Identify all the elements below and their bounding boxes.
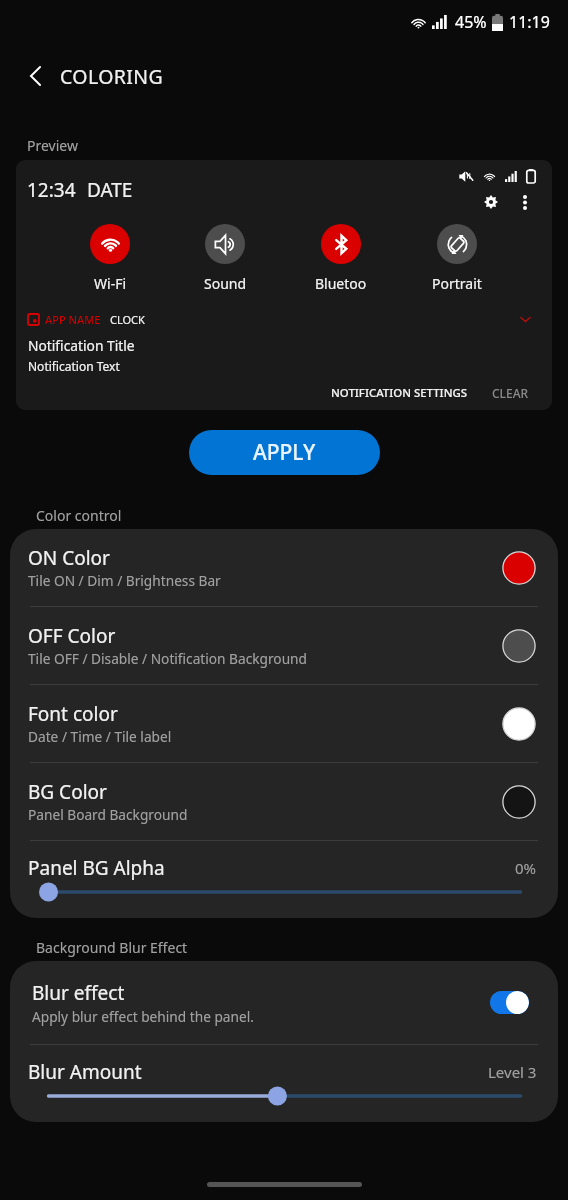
staticText: 12:34 xyxy=(27,177,76,203)
button[interactable]: APPLY xyxy=(189,430,380,475)
staticText: COLORING xyxy=(60,63,164,90)
staticText: OFF Color xyxy=(28,623,116,649)
button[interactable]: Blur effect xyxy=(10,961,558,1044)
button[interactable]: Portrait xyxy=(425,224,489,293)
staticText: Panel BG Alpha xyxy=(28,855,515,881)
staticText: 0% xyxy=(515,858,537,878)
staticText: DATE xyxy=(87,177,133,203)
staticText: NOTIFICATION SETTINGS xyxy=(331,385,468,401)
staticText: Sound xyxy=(204,274,247,293)
staticText: Date / Time / Tile label xyxy=(28,727,172,746)
staticText: Tile OFF / Disable / Notification Backgr… xyxy=(28,649,307,668)
button[interactable]: Sound xyxy=(193,224,257,293)
staticText: Notification Text xyxy=(28,358,120,374)
staticText: Wi-Fi xyxy=(94,274,127,293)
staticText: Background Blur Effect xyxy=(36,938,188,957)
staticText: CLOCK xyxy=(110,312,145,327)
staticText: Blur Amount xyxy=(28,1059,488,1085)
staticText: Apply blur effect behind the panel. xyxy=(32,1007,254,1026)
button[interactable]: OFF Color xyxy=(10,607,558,684)
button[interactable]: Font color xyxy=(10,685,558,762)
staticText: Color control xyxy=(36,506,122,525)
staticText: Panel Board Background xyxy=(28,805,188,824)
button[interactable]: BG Color xyxy=(10,763,558,840)
button[interactable]: More options xyxy=(514,191,536,213)
staticText: Portrait xyxy=(432,274,482,293)
staticText: 45% xyxy=(455,11,487,33)
staticText: ON Color xyxy=(28,545,110,571)
staticText: BG Color xyxy=(28,779,107,805)
staticText: Preview xyxy=(27,136,78,155)
button[interactable]: Slider xyxy=(39,1086,530,1106)
staticText: APP NAME xyxy=(45,312,101,327)
staticText: Level 3 xyxy=(488,1062,537,1082)
button[interactable]: Slider xyxy=(39,882,530,902)
staticText: Bluetoo xyxy=(315,274,367,293)
button[interactable]: NOTIFICATION SETTINGS xyxy=(323,379,476,407)
staticText: Notification Title xyxy=(28,336,135,355)
staticText: CLEAR xyxy=(492,385,529,401)
button[interactable]: Settings xyxy=(480,191,502,213)
staticText: Tile ON / Dim / Brightness Bar xyxy=(28,571,221,590)
button[interactable]: CLEAR xyxy=(484,379,537,407)
staticText: Font color xyxy=(28,701,118,727)
staticText: APPLY xyxy=(253,438,316,467)
button[interactable]: Wi-Fi xyxy=(78,224,142,293)
staticText: Blur effect xyxy=(32,980,125,1006)
button[interactable]: Bluetoo xyxy=(309,224,373,293)
button[interactable]: ON Color xyxy=(10,529,558,606)
button[interactable]: Back xyxy=(18,59,52,93)
staticText: 11:19 xyxy=(509,11,550,33)
